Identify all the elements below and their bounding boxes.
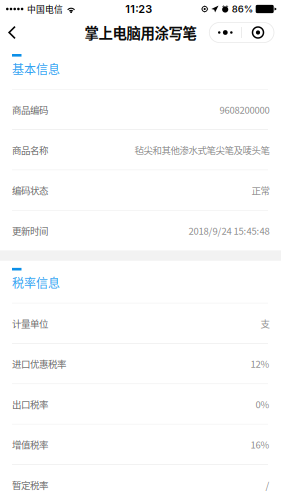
staticText: 12% bbox=[250, 357, 269, 371]
staticText: 16% bbox=[250, 438, 269, 451]
staticText: 中国电信 bbox=[27, 3, 63, 15]
staticText: 更新时间 bbox=[12, 224, 48, 237]
button[interactable]: Close mini program bbox=[242, 22, 274, 42]
button[interactable]: More bbox=[209, 22, 241, 42]
staticText: 进口优惠税率 bbox=[12, 357, 66, 371]
staticText: 2018/9/24 15:45:48 bbox=[188, 224, 269, 237]
staticText: 86% bbox=[232, 3, 254, 15]
staticText: 增值税率 bbox=[12, 438, 48, 451]
staticText: 暂定税率 bbox=[12, 478, 48, 492]
staticText: 商品编码 bbox=[12, 103, 48, 116]
staticText: 商品名称 bbox=[12, 143, 48, 157]
staticText: 掌上电脑用涂写笔 bbox=[84, 22, 196, 43]
staticText: 计量单位 bbox=[12, 316, 48, 330]
staticText: 0% bbox=[255, 397, 269, 411]
staticText: 编码状态 bbox=[12, 183, 48, 197]
staticText: 支 bbox=[260, 316, 269, 330]
staticText: / bbox=[265, 478, 269, 492]
staticText: 基本信息 bbox=[12, 60, 60, 77]
staticText: 9608200000 bbox=[219, 103, 269, 116]
staticText: 毡尖和其他渗水式笔尖笔及唛头笔 bbox=[134, 143, 269, 157]
staticText: 11:23 bbox=[125, 2, 152, 16]
staticText: 正常 bbox=[251, 183, 269, 197]
staticText: 税率信息 bbox=[12, 274, 60, 291]
button[interactable]: Back bbox=[0, 20, 26, 45]
staticText: 出口税率 bbox=[12, 397, 48, 411]
